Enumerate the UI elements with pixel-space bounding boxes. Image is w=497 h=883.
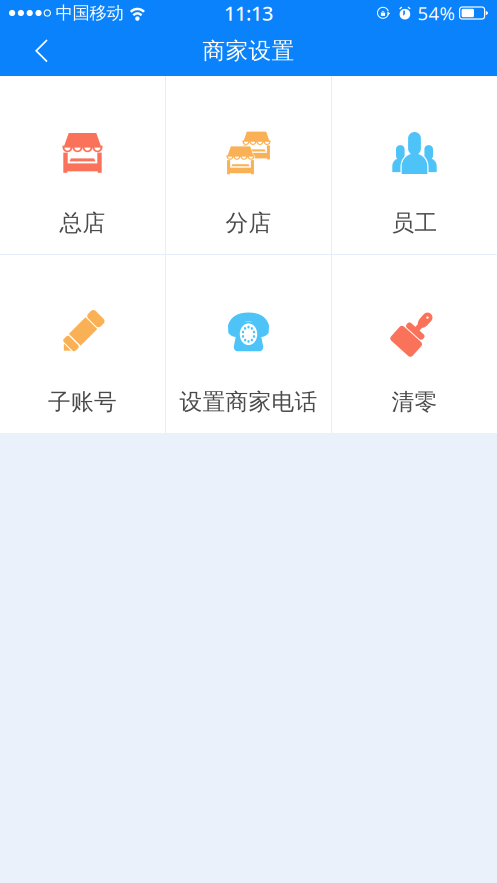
staticText: 中国移动 — [55, 2, 123, 24]
staticText: 员工 — [391, 209, 437, 237]
button[interactable]: 返回 — [0, 27, 78, 75]
staticText: 54% — [418, 1, 456, 25]
button[interactable]: 子账号 — [0, 255, 165, 433]
staticText: 总店 — [59, 209, 105, 237]
staticText: 分店 — [225, 209, 271, 237]
button[interactable]: 总店 — [0, 76, 165, 254]
staticText: 商家设置 — [202, 37, 294, 65]
staticText: 清零 — [391, 388, 437, 416]
button[interactable]: 设置商家电话 — [166, 255, 331, 433]
staticText: 子账号 — [48, 388, 117, 416]
staticText: 设置商家电话 — [179, 388, 317, 416]
staticText: 11:13 — [224, 0, 273, 26]
button[interactable]: 员工 — [332, 76, 497, 254]
button[interactable]: 清零 — [332, 255, 497, 433]
button[interactable]: 分店 — [166, 76, 331, 254]
